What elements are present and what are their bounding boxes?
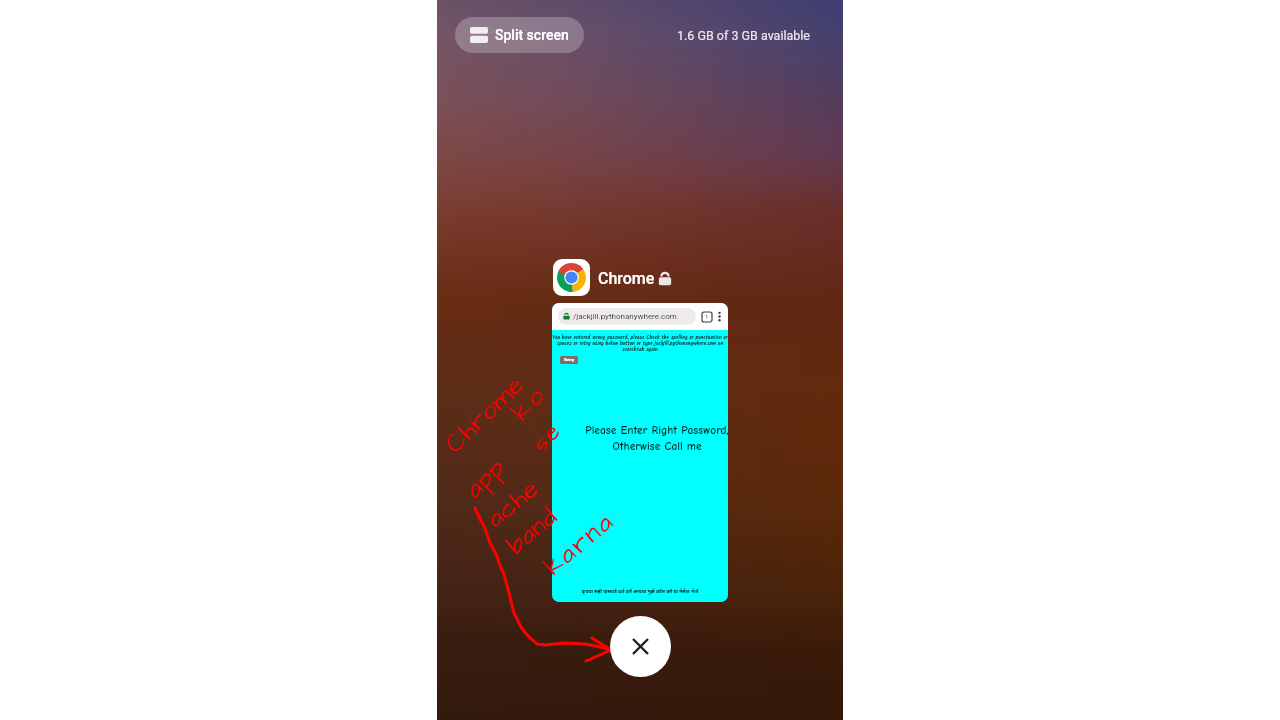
button[interactable]: Clear all recent apps xyxy=(610,616,671,677)
staticText: कृपया सही पासवर्ड दर्ज करें अन्यथा मुझे … xyxy=(552,588,728,595)
button[interactable]: /jackjill.pythonanywhere.com xyxy=(552,303,728,602)
staticText: karna xyxy=(536,503,623,584)
staticText: ko xyxy=(503,377,556,429)
staticText: se xyxy=(525,413,571,459)
button[interactable]: Split screen xyxy=(455,17,584,53)
staticText: 1.6 GB of 3 GB available xyxy=(677,28,810,43)
staticText: Chrome xyxy=(437,367,532,461)
staticText: /jackjill.pythonanywhere.com xyxy=(573,312,677,321)
staticText: app xyxy=(457,450,514,506)
button[interactable]: Retry xyxy=(560,356,578,364)
staticText: You have entered wrong password, please … xyxy=(552,334,728,354)
staticText: 1 xyxy=(705,313,709,321)
staticText: band xyxy=(499,499,566,563)
staticText: Retry xyxy=(564,357,575,364)
staticText: Chrome xyxy=(598,269,655,288)
staticText: ache xyxy=(478,471,547,536)
staticText: Split screen xyxy=(495,27,569,43)
staticText: Please Enter Right Password, Otherwise C… xyxy=(582,424,728,453)
